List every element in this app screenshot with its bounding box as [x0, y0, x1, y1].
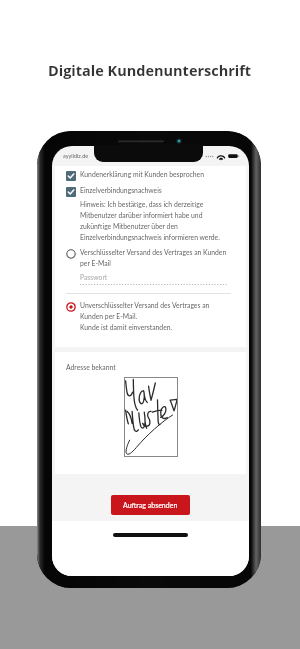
- staticText: Kundenerklärung mit Kunden besprochen: [80, 170, 204, 178]
- staticText: ayyildiz.de: [63, 153, 89, 160]
- staticText: Verschlüsselter Versand des Vertrages an…: [80, 248, 231, 267]
- staticText: Auftrag absenden: [123, 501, 178, 509]
- button[interactable]: Unverschlüsselter Versand des Vertrages …: [66, 301, 231, 331]
- button[interactable]: Auftrag absenden: [111, 495, 190, 515]
- button[interactable]: Einzelverbindungsnachweis: [66, 186, 231, 196]
- staticText: Unverschlüsselter Versand des Vertrages …: [80, 301, 231, 331]
- staticText: Digitale Kundenunterschrift: [48, 61, 252, 81]
- staticText: Einzelverbindungsnachweis: [80, 186, 162, 194]
- staticText: Adresse bekannt: [66, 363, 116, 371]
- staticText: Hinweis: Ich bestätige, dass ich derzeit…: [80, 200, 231, 241]
- staticText: Passwort: [80, 273, 108, 281]
- button[interactable]: Verschlüsselter Versand des Vertrages an…: [66, 248, 231, 267]
- button[interactable]: Kundenerklärung mit Kunden besprochen: [66, 170, 231, 180]
